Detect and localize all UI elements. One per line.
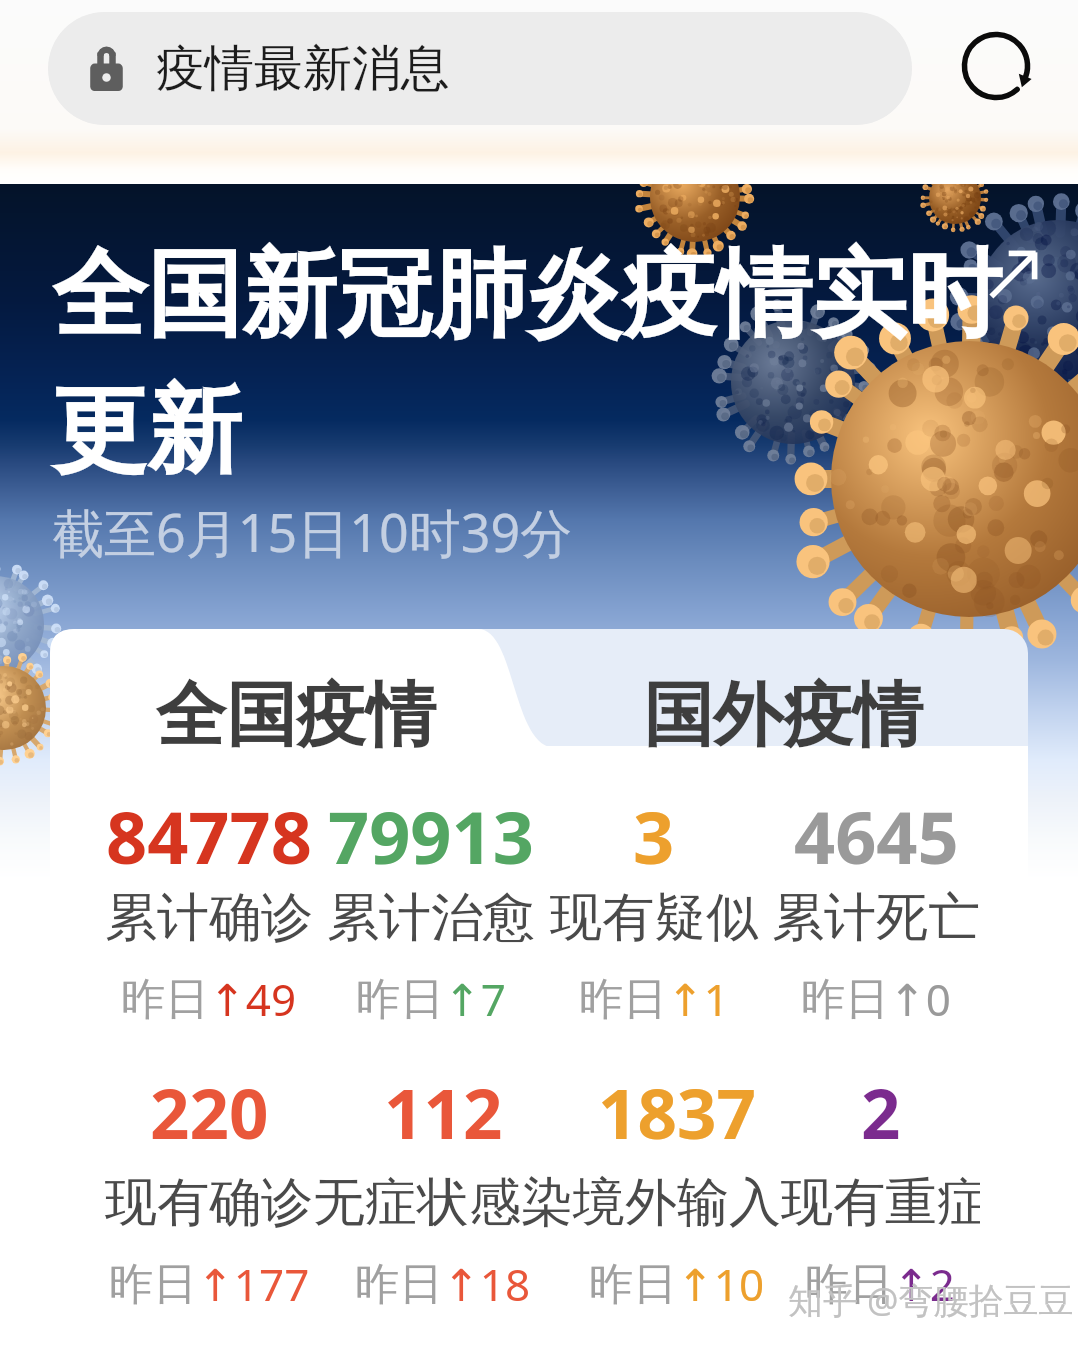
- staticText: 现有疑似: [550, 885, 758, 951]
- staticText: 无症状感染: [313, 1170, 573, 1236]
- staticText: 现有确诊: [105, 1170, 313, 1236]
- staticText: 昨日: [589, 1257, 677, 1312]
- button[interactable]: 112: [313, 1065, 573, 1314]
- button[interactable]: 4645: [772, 787, 980, 1029]
- staticText: 更新: [52, 372, 242, 492]
- staticText: 累计死亡: [772, 885, 980, 951]
- staticText: 国外疫情: [643, 672, 923, 760]
- staticText: ↑0: [889, 969, 952, 1029]
- button[interactable]: Refresh: [939, 9, 1052, 122]
- staticText: ↑10: [677, 1254, 765, 1314]
- staticText: ↑177: [197, 1254, 310, 1314]
- staticText: 昨日: [579, 972, 667, 1027]
- button[interactable]: 84778: [105, 787, 313, 1029]
- button[interactable]: 79913: [327, 787, 535, 1029]
- staticText: 累计治愈: [327, 885, 535, 951]
- button[interactable]: 220: [105, 1065, 313, 1314]
- staticText: ↑7: [444, 969, 507, 1029]
- button[interactable]: 全国疫情: [50, 629, 542, 748]
- staticText: 境外输入: [573, 1170, 781, 1236]
- staticText: 昨日: [801, 972, 889, 1027]
- staticText: 全国疫情: [156, 672, 436, 760]
- button[interactable]: 3: [550, 787, 758, 1029]
- staticText: 2: [861, 1065, 901, 1159]
- staticText: ↑1: [667, 969, 730, 1029]
- button[interactable]: 2: [781, 1065, 980, 1314]
- staticText: 84778: [106, 787, 312, 885]
- button[interactable]: 国外疫情: [538, 629, 1028, 748]
- staticText: 昨日: [355, 1257, 443, 1312]
- staticText: 220: [150, 1065, 269, 1159]
- staticText: 3: [633, 787, 675, 885]
- staticText: 截至6月15日10时39分: [52, 496, 573, 567]
- staticText: 昨日: [109, 1257, 197, 1312]
- staticText: 1837: [598, 1065, 756, 1159]
- staticText: 昨日: [356, 972, 444, 1027]
- staticText: 昨日: [121, 972, 209, 1027]
- staticText: 累计确诊: [105, 885, 313, 951]
- staticText: 全国新冠肺炎疫情实时: [52, 236, 1002, 356]
- staticText: 知乎 @弯腰拾豆豆: [788, 1276, 1074, 1324]
- staticText: ↑2: [893, 1254, 956, 1314]
- button[interactable]: 疫情最新消息: [48, 12, 912, 125]
- staticText: 疫情最新消息: [156, 38, 450, 100]
- staticText: 昨日: [805, 1257, 893, 1312]
- staticText: 112: [384, 1065, 503, 1159]
- staticText: ↑18: [443, 1254, 531, 1314]
- staticText: 现有重症: [781, 1170, 980, 1236]
- staticText: 79913: [328, 787, 534, 885]
- staticText: ↑49: [209, 969, 297, 1029]
- button[interactable]: 1837: [573, 1065, 781, 1314]
- staticText: 4645: [794, 787, 959, 885]
